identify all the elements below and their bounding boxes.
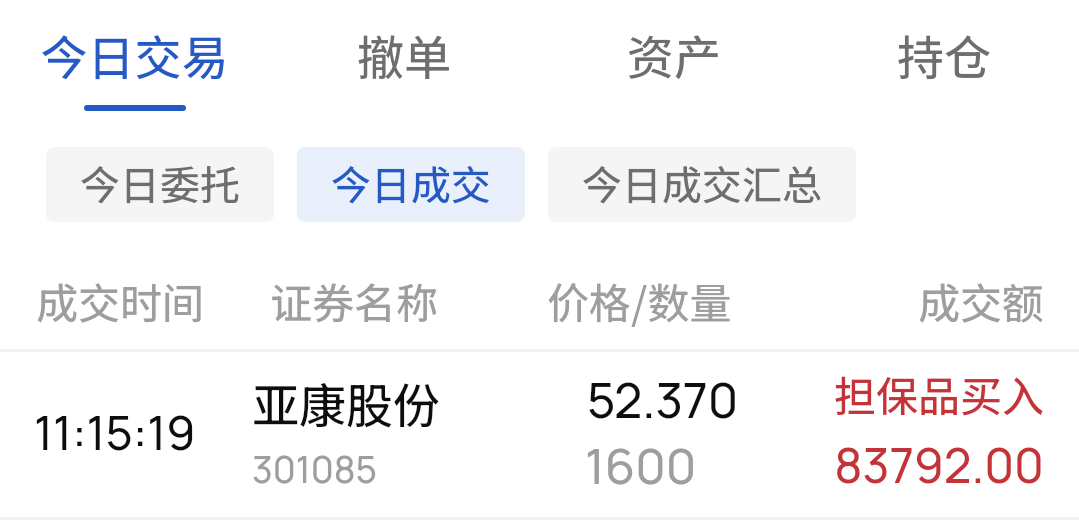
staticText: 今日交易 <box>0 20 269 88</box>
staticText: 资产 <box>539 20 809 88</box>
button[interactable]: 持仓 <box>809 0 1079 130</box>
staticText: 301085 <box>252 444 378 495</box>
button[interactable]: 撤单 <box>269 0 539 130</box>
button[interactable]: 今日成交 <box>297 147 525 222</box>
staticText: 成交时间 <box>36 270 205 331</box>
button[interactable]: 11:15:19 <box>0 352 1079 517</box>
staticText: 成交额 <box>918 270 1045 331</box>
button[interactable]: 今日交易 <box>0 0 269 130</box>
button[interactable]: 资产 <box>539 0 809 130</box>
staticText: 52.370 <box>587 366 739 433</box>
staticText: 亚康股份 <box>252 368 440 436</box>
staticText: 今日委托 <box>80 154 240 212</box>
staticText: 撤单 <box>269 20 539 88</box>
staticText: 担保品买入 <box>0 363 1044 424</box>
staticText: 证券名称 <box>270 270 439 331</box>
staticText: 今日成交 <box>331 154 491 212</box>
staticText: 83792.00 <box>0 432 1044 498</box>
staticText: 价格/数量 <box>547 270 732 331</box>
button[interactable]: 今日成交汇总 <box>548 147 856 222</box>
staticText: 11:15:19 <box>34 400 196 464</box>
staticText: 今日成交汇总 <box>582 154 822 212</box>
staticText: 持仓 <box>809 20 1079 88</box>
staticText: 1600 <box>585 432 697 499</box>
button[interactable]: 今日委托 <box>46 147 274 222</box>
